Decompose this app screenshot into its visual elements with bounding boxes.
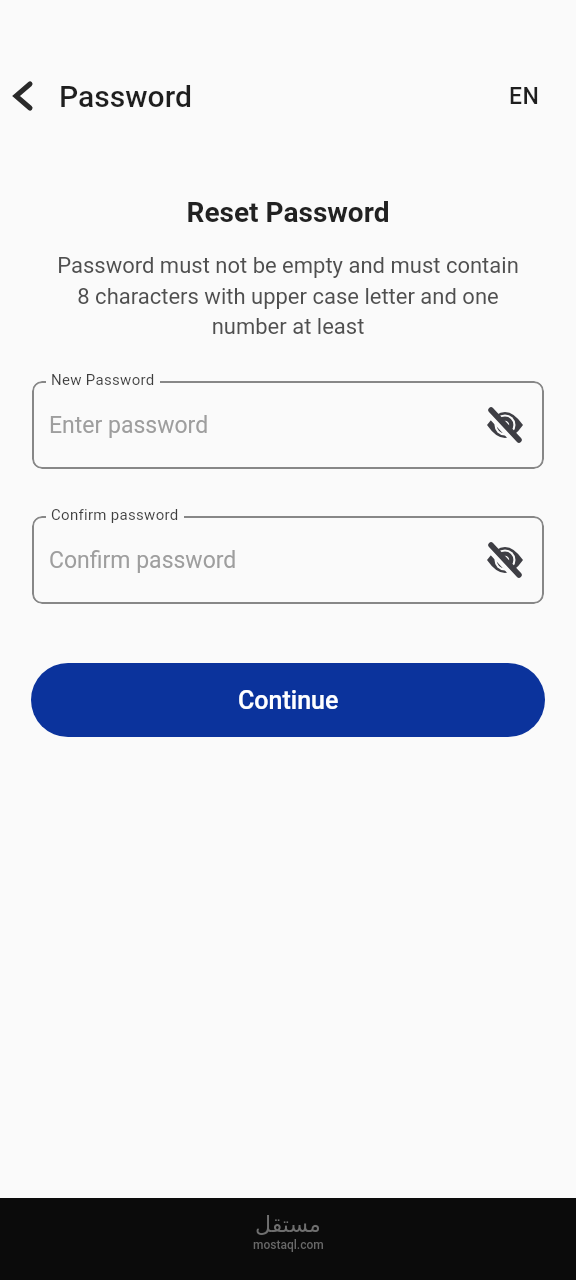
button[interactable] — [486, 408, 524, 442]
button[interactable] — [486, 543, 524, 577]
staticText: Confirm password — [49, 547, 237, 574]
button[interactable]: Enter password — [32, 381, 544, 469]
button[interactable]: EN — [509, 83, 540, 110]
staticText: Continue — [238, 686, 339, 715]
staticText: New Password — [51, 371, 155, 389]
staticText: Enter password — [49, 412, 209, 439]
staticText: Password must not be empty and must cont… — [28, 253, 548, 339]
staticText: Password — [59, 79, 192, 114]
button[interactable]: Confirm password — [32, 516, 544, 604]
staticText: مستقل — [255, 1212, 321, 1238]
staticText: EN — [509, 83, 540, 110]
staticText: Reset Password — [0, 196, 576, 229]
staticText: mostaql.com — [253, 1238, 324, 1252]
staticText: Confirm password — [51, 506, 179, 524]
button[interactable] — [3, 76, 43, 116]
button[interactable]: Continue — [31, 663, 545, 737]
